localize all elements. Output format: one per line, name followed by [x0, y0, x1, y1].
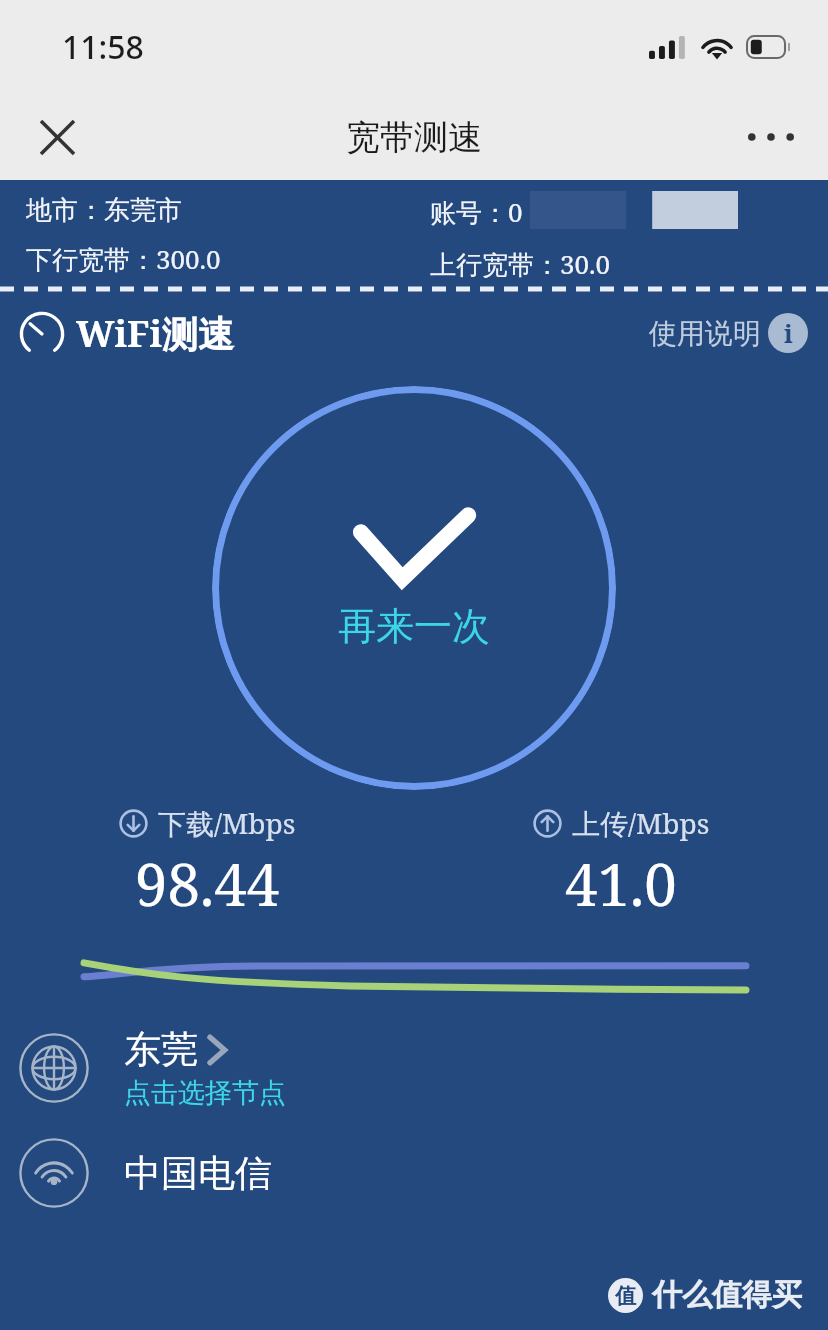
- staticText: 点击选择节点: [124, 1076, 286, 1110]
- staticText: 值: [615, 1283, 636, 1309]
- staticText: 地市：东莞市: [26, 194, 182, 227]
- button[interactable]: 东莞: [0, 1016, 828, 1120]
- staticText: 使用说明: [649, 316, 761, 351]
- button[interactable]: 中国电信: [0, 1120, 828, 1226]
- staticText: i: [784, 316, 793, 350]
- staticText: 41.0: [565, 844, 677, 916]
- button[interactable]: Close: [22, 102, 92, 172]
- staticText: 11:58: [62, 25, 144, 69]
- staticText: WiFi测速: [76, 309, 235, 358]
- staticText: 98.44: [135, 844, 280, 916]
- staticText: 东莞: [124, 1026, 198, 1073]
- staticText: 下载/Mbps: [158, 804, 296, 842]
- staticText: 再来一次: [338, 602, 490, 650]
- staticText: 下行宽带：300.0: [26, 241, 221, 277]
- staticText: 账号：0: [430, 194, 523, 230]
- staticText: 上行宽带：30.0: [430, 246, 611, 282]
- button[interactable]: More options: [736, 102, 806, 172]
- button[interactable]: 再来一次: [212, 386, 616, 790]
- button[interactable]: 使用说明: [649, 313, 808, 353]
- staticText: 什么值得买: [652, 1276, 802, 1314]
- staticText: 中国电信: [124, 1150, 272, 1197]
- staticText: 上传/Mbps: [572, 804, 710, 842]
- staticText: 宽带测速: [346, 116, 482, 159]
